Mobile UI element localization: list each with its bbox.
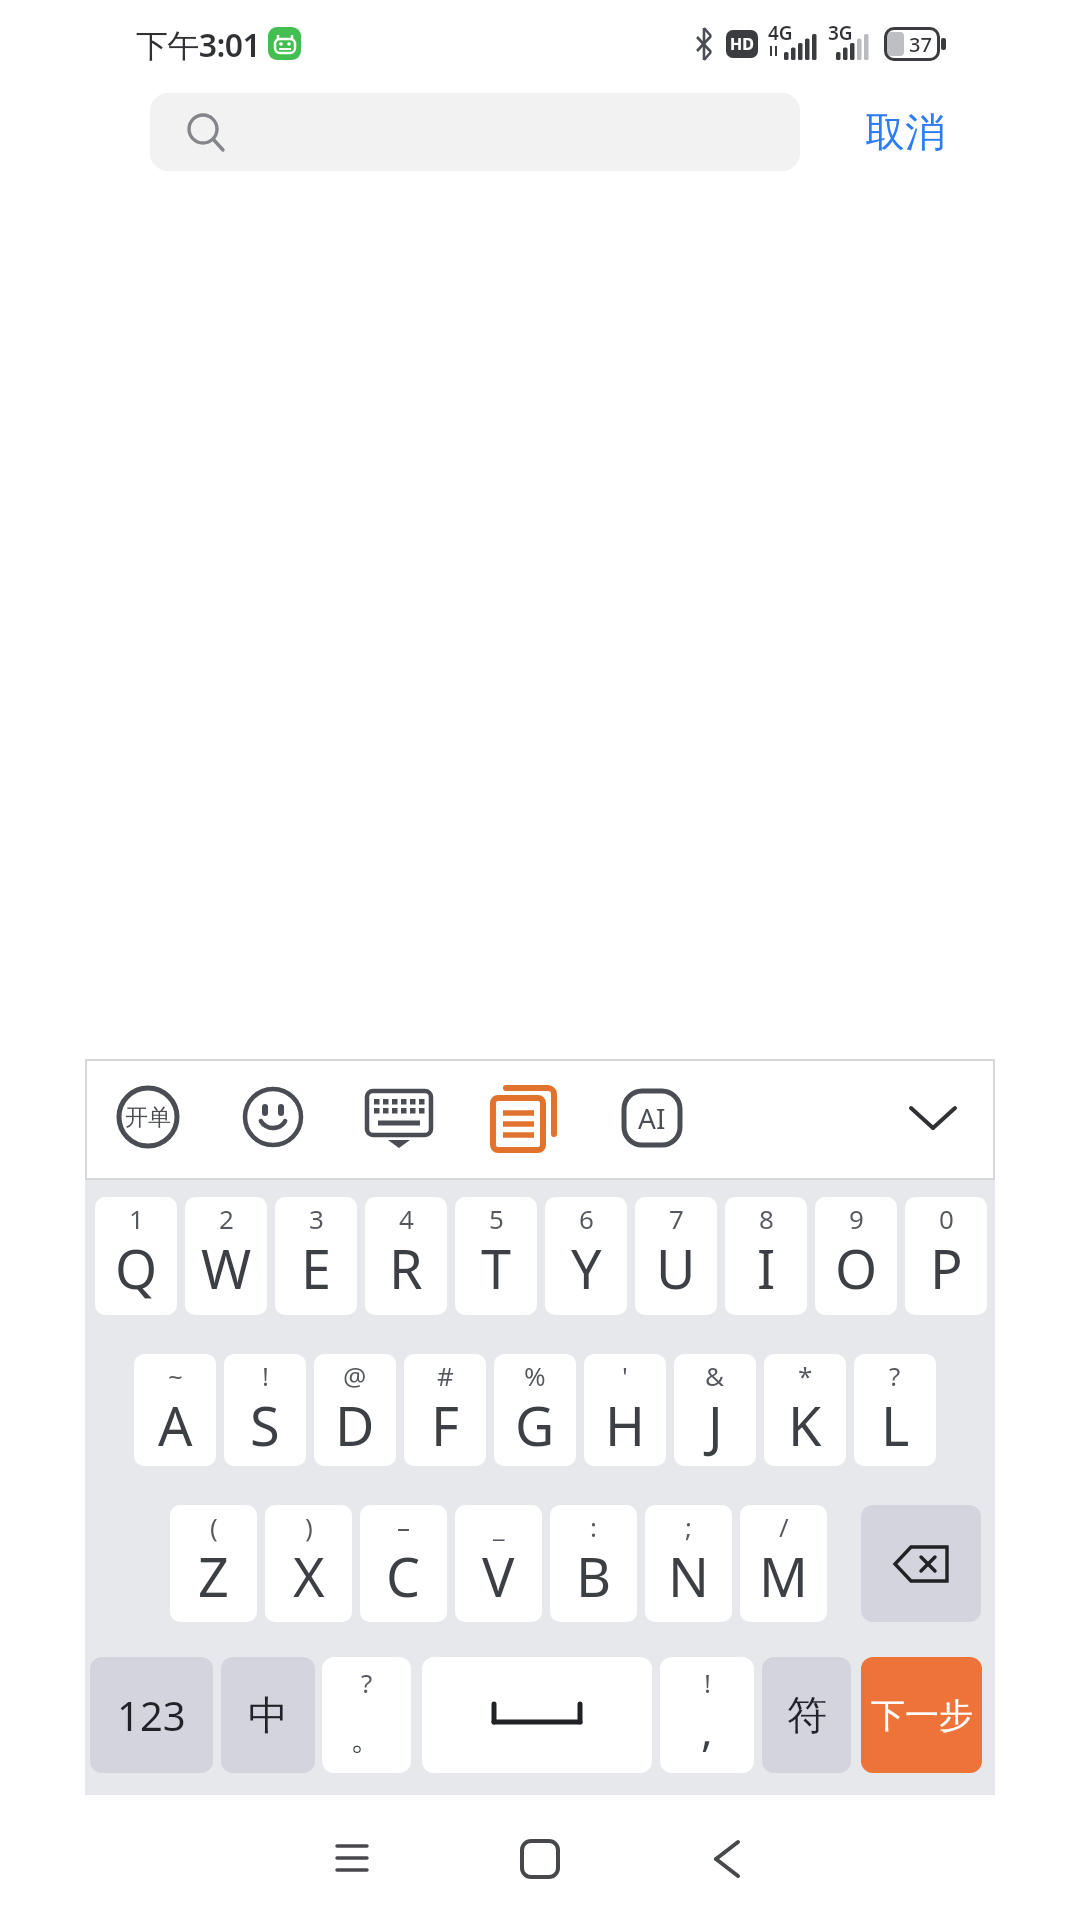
button[interactable]: ?	[854, 1354, 936, 1466]
button[interactable]	[366, 1090, 434, 1146]
button[interactable]: '	[584, 1354, 666, 1466]
staticText: J	[708, 1388, 723, 1462]
staticText: N	[668, 1539, 710, 1613]
staticText: 6	[579, 1201, 594, 1236]
button[interactable]: ;	[645, 1505, 732, 1622]
staticText: S	[250, 1388, 280, 1462]
staticText: 中	[248, 1690, 288, 1740]
staticText: Y	[571, 1231, 602, 1305]
button[interactable]: %	[494, 1354, 576, 1466]
staticText: W	[201, 1231, 252, 1305]
button[interactable]: 1	[95, 1197, 177, 1315]
staticText: O	[835, 1231, 878, 1305]
staticText: 4	[399, 1201, 414, 1236]
staticText: ~	[168, 1358, 183, 1393]
button[interactable]: 开单	[116, 1085, 180, 1149]
button[interactable]: 下一步	[861, 1657, 982, 1773]
staticText: F	[431, 1388, 460, 1462]
staticText: 1	[129, 1201, 144, 1236]
staticText: 8	[759, 1201, 774, 1236]
button[interactable]: 8	[725, 1197, 807, 1315]
button[interactable]: 0	[905, 1197, 987, 1315]
staticText: G	[515, 1388, 555, 1462]
staticText: C	[386, 1539, 421, 1613]
button[interactable]: 2	[185, 1197, 267, 1315]
staticText: !	[262, 1358, 269, 1393]
button[interactable]: #	[404, 1354, 486, 1466]
staticText: 。	[350, 1716, 384, 1759]
button[interactable]: 3	[275, 1197, 357, 1315]
staticText: 123	[117, 1688, 186, 1742]
staticText: 开单	[125, 1103, 171, 1132]
staticText: U	[656, 1231, 696, 1305]
button[interactable]: –	[360, 1505, 447, 1622]
button[interactable]: &	[674, 1354, 756, 1466]
button[interactable]: !	[660, 1657, 754, 1773]
staticText: Q	[115, 1231, 158, 1305]
staticText: 37	[909, 31, 932, 58]
button[interactable]: 5	[455, 1197, 537, 1315]
staticText: #	[437, 1358, 454, 1393]
staticText: 取消	[865, 107, 945, 157]
button[interactable]: 9	[815, 1197, 897, 1315]
staticText: D	[335, 1388, 375, 1462]
button[interactable]	[515, 1833, 565, 1883]
staticText: H	[605, 1388, 646, 1462]
button[interactable]: (	[170, 1505, 257, 1622]
button[interactable]	[861, 1505, 981, 1622]
button[interactable]: !	[224, 1354, 306, 1466]
staticText: B	[576, 1539, 612, 1613]
button[interactable]: 4	[365, 1197, 447, 1315]
staticText: ,	[701, 1699, 713, 1759]
button[interactable]: 123	[90, 1657, 213, 1773]
staticText: –	[397, 1509, 411, 1544]
staticText: '	[622, 1358, 628, 1393]
button[interactable]: 6	[545, 1197, 627, 1315]
staticText: )	[305, 1509, 313, 1544]
staticText: 4G	[768, 20, 793, 46]
button[interactable]	[330, 1833, 380, 1883]
staticText: ?	[889, 1358, 901, 1393]
staticText: (	[210, 1509, 218, 1544]
button[interactable]: ~	[134, 1354, 216, 1466]
staticText: %	[524, 1358, 546, 1393]
staticText: 7	[669, 1201, 684, 1236]
button[interactable]: @	[314, 1354, 396, 1466]
button[interactable]: 中	[221, 1657, 315, 1773]
staticText: HD	[730, 33, 754, 55]
button[interactable]	[422, 1657, 652, 1773]
staticText: !	[704, 1665, 711, 1700]
button[interactable]: AI	[622, 1089, 682, 1147]
button[interactable]: :	[550, 1505, 637, 1622]
staticText: I	[757, 1231, 776, 1305]
button[interactable]: *	[764, 1354, 846, 1466]
staticText: M	[759, 1539, 808, 1613]
button[interactable]	[908, 1100, 958, 1136]
button[interactable]	[242, 1086, 304, 1148]
staticText: K	[788, 1388, 822, 1462]
staticText: :	[590, 1509, 597, 1544]
button[interactable]: _	[455, 1505, 542, 1622]
button[interactable]: /	[740, 1505, 827, 1622]
button[interactable]: 符	[762, 1657, 851, 1773]
staticText: V	[482, 1539, 515, 1613]
staticText: 5	[489, 1201, 504, 1236]
staticText: ?	[361, 1665, 373, 1700]
staticText: R	[389, 1231, 423, 1305]
button[interactable]	[490, 1082, 560, 1152]
staticText: Z	[198, 1539, 229, 1613]
button[interactable]: 取消	[850, 100, 960, 164]
staticText: A	[158, 1388, 193, 1462]
staticText: _	[493, 1509, 505, 1544]
button[interactable]	[150, 93, 800, 171]
staticText: 符	[787, 1690, 827, 1740]
staticText: 下一步	[871, 1694, 973, 1737]
button[interactable]: 7	[635, 1197, 717, 1315]
button[interactable]: ?	[322, 1657, 411, 1773]
button[interactable]	[700, 1833, 750, 1883]
button[interactable]: )	[265, 1505, 352, 1622]
staticText: P	[930, 1231, 963, 1305]
staticText: AI	[638, 1099, 666, 1137]
staticText: 3G	[828, 20, 853, 46]
staticText: 2	[219, 1201, 234, 1236]
